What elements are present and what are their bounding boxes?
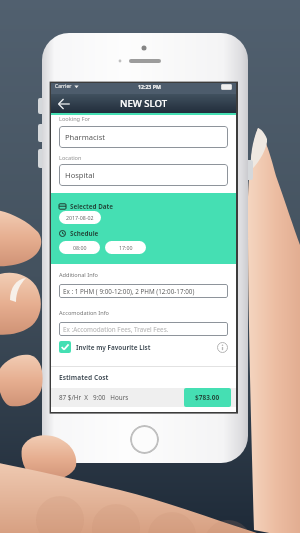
staticText: 12:23 PM <box>138 83 161 90</box>
staticText: 17:00 <box>119 244 133 251</box>
button[interactable]: Ex :Accomodation Fees, Travel Fees. <box>59 322 228 336</box>
staticText: Ex : 1 PHM ( 9:00-12:00), 2 PHM (12:00-1… <box>63 287 195 296</box>
staticText: Estimated Cost <box>59 373 109 382</box>
staticText: 2017-08-02 <box>66 214 94 221</box>
button[interactable]: 08:00 <box>59 241 100 254</box>
staticText: Pharmacist <box>65 132 106 142</box>
staticText: Selected Date <box>70 202 114 211</box>
button[interactable]: 17:00 <box>105 241 146 254</box>
staticText: Invite my Favourite List <box>76 343 151 352</box>
button[interactable]: Pharmacist <box>59 126 228 148</box>
button[interactable]: 2017-08-02 <box>59 211 101 224</box>
staticText: Hospital <box>65 170 95 180</box>
button[interactable]: Ex : 1 PHM ( 9:00-12:00), 2 PHM (12:00-1… <box>59 284 228 298</box>
staticText: 87 $/Hr X 9:00 Hours <box>59 393 129 402</box>
button[interactable]: Home <box>130 425 159 454</box>
button[interactable]: Back <box>56 96 72 112</box>
staticText: Location <box>59 154 82 162</box>
button[interactable]: Info <box>217 342 228 353</box>
staticText: Ex :Accomodation Fees, Travel Fees. <box>63 325 169 334</box>
button[interactable]: Invite my Favourite List <box>59 339 228 355</box>
staticText: Schedule <box>70 229 99 238</box>
staticText: Looking For <box>59 115 91 123</box>
button[interactable]: $783.00 <box>184 388 231 407</box>
staticText: Carrier <box>55 83 72 90</box>
staticText: $783.00 <box>195 393 220 402</box>
staticText: 08:00 <box>73 244 87 251</box>
staticText: Accomodation Info <box>59 309 109 317</box>
staticText: NEW SLOT <box>120 97 168 110</box>
staticText: Additional Info <box>59 271 98 279</box>
button[interactable]: Hospital <box>59 164 228 186</box>
